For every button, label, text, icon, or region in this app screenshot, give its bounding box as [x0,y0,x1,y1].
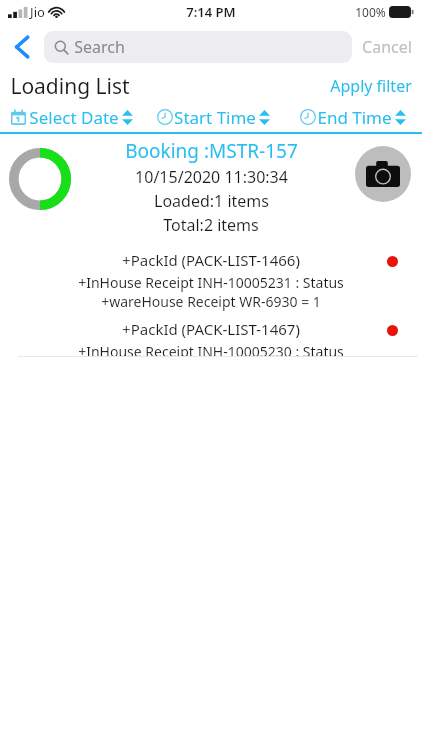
staticText: Cancel [362,36,412,58]
staticText: +InHouse Receipt INH-10005230 : Status [78,342,344,356]
staticText: Total:2 items [163,214,259,236]
staticText: +wareHouse Receipt WR-6930 = 1 [101,292,321,311]
button[interactable]: Take photo [0,134,422,356]
staticText: Booking :MSTR-157 [125,138,298,164]
button[interactable]: Take photo [355,146,411,202]
button[interactable]: Select Date [0,102,143,132]
staticText: Apply filter [330,75,412,97]
button[interactable]: Apply filter [330,75,412,97]
staticText: Select Date [29,106,119,129]
button[interactable]: +PackId (PACK-LIST-1466) [0,250,422,311]
staticText: Jio [30,3,45,21]
staticText: +PackId (PACK-LIST-1467) [122,319,300,339]
staticText: +InHouse Receipt INH-10005231 : Status [78,273,344,292]
staticText: 100% [355,4,386,20]
staticText: Loading List [10,72,130,101]
staticText: End Time [317,106,392,129]
button[interactable]: Cancel [362,24,412,70]
staticText: Loaded:1 items [154,190,269,212]
staticText: Search [74,36,125,58]
staticText: Start Time [174,106,256,129]
button[interactable]: End Time [284,102,422,132]
button[interactable]: Start Time [143,102,284,132]
button[interactable]: Back [0,24,44,70]
button[interactable]: Search [44,31,352,63]
staticText: 7:14 PM [186,3,236,21]
button[interactable]: +PackId (PACK-LIST-1467) [0,319,422,356]
staticText: +PackId (PACK-LIST-1466) [122,250,300,270]
staticText: 10/15/2020 11:30:34 [135,166,288,188]
